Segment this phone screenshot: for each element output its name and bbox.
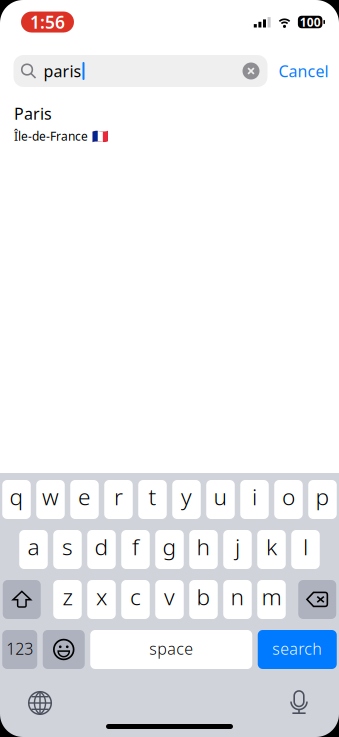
button[interactable]: l <box>291 530 320 569</box>
staticText: o <box>282 481 295 511</box>
button[interactable]: k <box>257 530 286 569</box>
button[interactable]: r <box>104 480 133 519</box>
staticText: q <box>9 481 23 511</box>
button[interactable]: w <box>36 480 65 519</box>
staticText: y <box>181 481 192 511</box>
staticText: 🇫🇷 <box>92 129 109 144</box>
staticText: paris <box>43 60 81 82</box>
staticText: 123 <box>6 638 33 659</box>
staticText: a <box>27 531 39 561</box>
button[interactable]: t <box>138 480 167 519</box>
button[interactable]: j <box>223 530 252 569</box>
button[interactable]: Dictate <box>287 690 311 716</box>
button[interactable]: Paris <box>0 87 339 144</box>
button[interactable]: z <box>53 580 82 619</box>
button[interactable]: a <box>19 530 48 569</box>
staticText: z <box>62 581 72 611</box>
staticText: n <box>230 581 244 611</box>
staticText: Île-de-France <box>14 128 88 144</box>
button[interactable]: f <box>121 530 150 569</box>
button[interactable]: n <box>223 580 252 619</box>
button[interactable]: 123 <box>2 630 37 669</box>
staticText: l <box>303 531 308 561</box>
button[interactable]: y <box>172 480 201 519</box>
staticText: u <box>213 481 227 511</box>
button[interactable]: search <box>258 630 337 669</box>
staticText: p <box>315 481 329 511</box>
button[interactable]: Emoji <box>43 630 85 669</box>
staticText: r <box>114 481 123 511</box>
button[interactable]: Cancel <box>267 55 339 87</box>
button[interactable]: x <box>87 580 116 619</box>
button[interactable]: e <box>70 480 99 519</box>
button[interactable]: q <box>2 480 31 519</box>
staticText: i <box>252 481 257 511</box>
button[interactable]: u <box>206 480 235 519</box>
button[interactable]: d <box>87 530 116 569</box>
staticText: 100 <box>300 14 321 30</box>
staticText: s <box>62 531 73 561</box>
staticText: h <box>196 531 210 561</box>
staticText: 1:56 <box>30 10 65 33</box>
button[interactable]: Delete <box>298 580 336 619</box>
button[interactable]: Clear text <box>242 62 259 79</box>
button[interactable]: Shift <box>3 580 41 619</box>
button[interactable]: m <box>257 580 286 619</box>
button[interactable]: Next keyboard <box>28 691 52 715</box>
staticText: w <box>42 481 59 511</box>
button[interactable]: s <box>53 530 82 569</box>
staticText: j <box>235 531 240 561</box>
staticText: x <box>96 581 107 611</box>
staticText: f <box>132 531 139 561</box>
staticText: m <box>261 581 281 611</box>
staticText: Cancel <box>278 60 328 82</box>
button[interactable]: c <box>121 580 150 619</box>
staticText: Paris <box>14 103 52 124</box>
staticText: search <box>272 638 322 659</box>
button[interactable]: v <box>155 580 184 619</box>
staticText: e <box>78 481 91 511</box>
staticText: b <box>196 581 210 611</box>
button[interactable]: h <box>189 530 218 569</box>
button[interactable]: b <box>189 580 218 619</box>
staticText: d <box>94 531 108 561</box>
staticText: space <box>149 638 193 659</box>
button[interactable]: o <box>274 480 303 519</box>
button[interactable]: i <box>240 480 269 519</box>
staticText: c <box>130 581 141 611</box>
button[interactable]: space <box>90 630 252 669</box>
staticText: t <box>148 481 156 511</box>
staticText: k <box>266 531 277 561</box>
staticText: v <box>164 581 175 611</box>
staticText: g <box>162 531 176 561</box>
button[interactable]: g <box>155 530 184 569</box>
button[interactable]: p <box>308 480 337 519</box>
